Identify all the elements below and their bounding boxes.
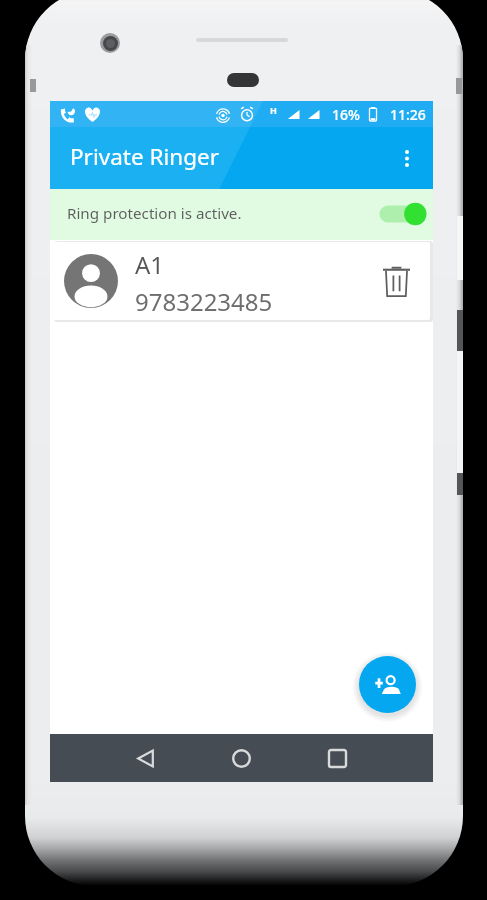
staticText: H	[270, 104, 277, 116]
button[interactable]	[381, 201, 425, 227]
button[interactable]: More options	[387, 138, 427, 178]
staticText: 11:26	[390, 105, 426, 124]
staticText: A1	[135, 248, 165, 281]
button[interactable]: Home	[205, 734, 277, 782]
staticText: 16%	[332, 105, 360, 124]
staticText: Private Ringer	[70, 141, 219, 172]
staticText: 9783223485	[135, 285, 273, 318]
button[interactable]: A1	[53, 242, 430, 320]
button[interactable]: Back	[109, 734, 181, 782]
button[interactable]: Add contact	[359, 656, 416, 713]
button[interactable]: Recents	[301, 734, 373, 782]
button[interactable]: Delete	[374, 259, 418, 303]
staticText: Ring protection is active.	[67, 203, 242, 224]
